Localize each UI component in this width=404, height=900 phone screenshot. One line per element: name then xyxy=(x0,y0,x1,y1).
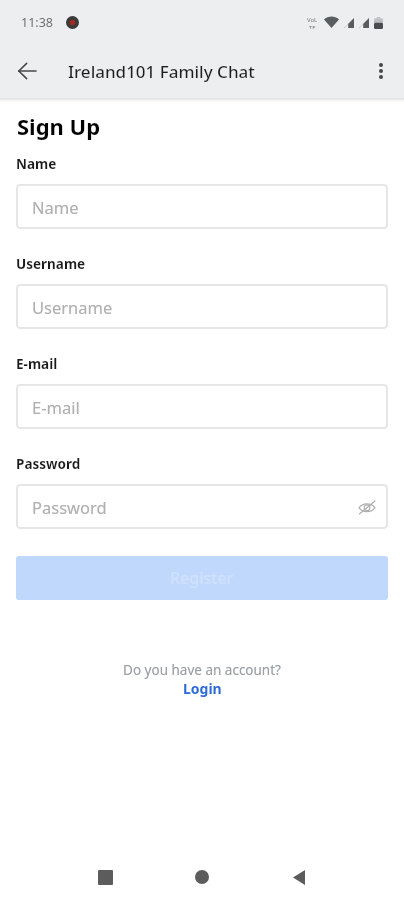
staticText: TE xyxy=(309,24,316,29)
button[interactable]: E-mail xyxy=(16,384,388,429)
button[interactable]: Back xyxy=(275,854,323,900)
button[interactable]: More options xyxy=(363,53,399,89)
button[interactable]: Name xyxy=(16,184,388,229)
staticText: Sign Up xyxy=(17,111,101,141)
button[interactable]: Login xyxy=(183,679,222,698)
staticText: Ireland101 Family Chat xyxy=(68,60,255,83)
staticText: Password xyxy=(16,455,81,473)
staticText: Username xyxy=(16,255,86,273)
button[interactable]: Home xyxy=(178,854,226,900)
staticText: Name xyxy=(32,196,79,218)
button[interactable]: Recent apps xyxy=(81,854,129,900)
staticText: Username xyxy=(32,296,113,318)
staticText: Login xyxy=(183,679,222,698)
staticText: Register xyxy=(170,567,234,589)
button[interactable]: Back xyxy=(7,51,47,91)
staticText: Password xyxy=(32,496,107,518)
staticText: Do you have an account? xyxy=(123,661,281,679)
button[interactable]: Username xyxy=(16,284,388,329)
staticText: E-mail xyxy=(16,355,58,373)
button[interactable]: Password xyxy=(16,484,388,529)
staticText: 11:38 xyxy=(21,14,53,31)
staticText: E-mail xyxy=(32,396,80,418)
staticText: Name xyxy=(16,155,57,173)
staticText: VoL xyxy=(307,16,318,24)
button[interactable]: Toggle password visibility xyxy=(355,495,379,519)
